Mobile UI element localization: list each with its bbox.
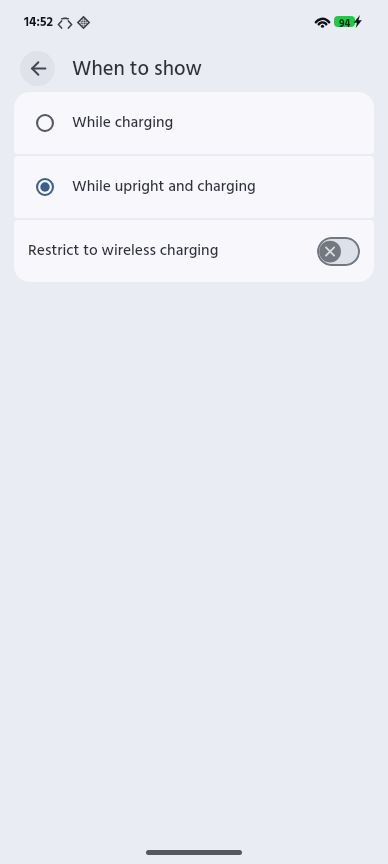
- staticText: While upright and charging: [72, 175, 256, 200]
- staticText: While charging: [72, 111, 174, 136]
- staticText: 14:52: [24, 12, 53, 33]
- staticText: Restrict to wireless charging: [28, 239, 317, 264]
- staticText: When to show: [72, 53, 202, 86]
- button[interactable]: Restrict to wireless charging: [14, 220, 374, 282]
- button[interactable]: While charging: [14, 92, 374, 154]
- button[interactable]: While upright and charging: [14, 156, 374, 218]
- button[interactable]: Back: [20, 51, 55, 86]
- staticText: 94: [339, 16, 351, 27]
